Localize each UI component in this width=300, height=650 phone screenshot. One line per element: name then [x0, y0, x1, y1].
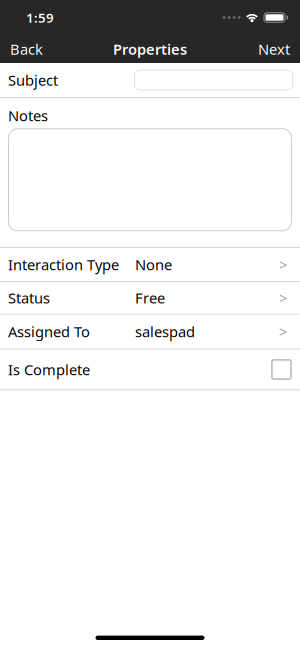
staticText: Assigned To	[8, 322, 90, 341]
staticText: Free	[135, 288, 165, 308]
button[interactable]: Subject	[134, 69, 293, 90]
button[interactable]: Status	[0, 282, 300, 314]
button[interactable]: Interaction Type	[0, 248, 300, 281]
staticText: Properties	[113, 39, 187, 59]
button[interactable]: Is Complete checkbox	[271, 359, 292, 380]
staticText: Back	[10, 39, 43, 59]
staticText: Notes	[8, 106, 48, 125]
button[interactable]: Back	[0, 39, 43, 59]
staticText: >	[279, 322, 287, 341]
staticText: Status	[8, 288, 50, 308]
staticText: >	[279, 288, 287, 308]
staticText: Next	[258, 39, 290, 59]
staticText: Is Complete	[8, 360, 90, 379]
staticText: Interaction Type	[8, 255, 119, 274]
staticText: 1:59	[26, 9, 54, 26]
staticText: Subject	[8, 70, 58, 90]
staticText: >	[279, 255, 287, 274]
button[interactable]: Assigned To	[0, 315, 300, 349]
staticText: None	[135, 255, 172, 274]
staticText: salespad	[135, 322, 195, 341]
button[interactable]: Notes	[0, 128, 300, 231]
button[interactable]: Next	[258, 39, 300, 59]
